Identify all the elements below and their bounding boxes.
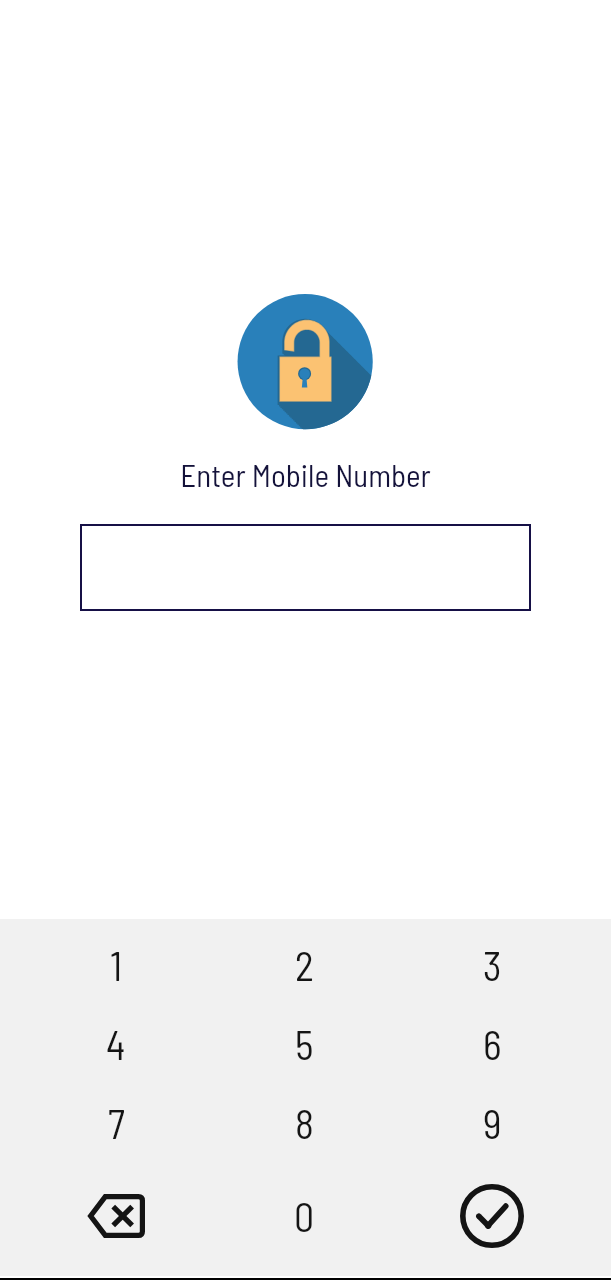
staticText: Enter Mobile Number (180, 456, 431, 493)
staticText: 5 (295, 1020, 314, 1068)
staticText: 2 (295, 941, 314, 989)
button[interactable]: Backspace (22, 1170, 210, 1262)
button[interactable]: 5 (210, 1004, 398, 1083)
button[interactable]: 1 (22, 925, 210, 1004)
staticText: 1 (110, 941, 123, 989)
staticText: 4 (106, 1020, 126, 1068)
staticText: 7 (108, 1099, 125, 1147)
button[interactable]: 8 (210, 1083, 398, 1162)
staticText: 9 (483, 1099, 502, 1147)
button[interactable]: 9 (398, 1083, 586, 1162)
button[interactable]: Confirm (398, 1170, 586, 1262)
button[interactable]: 3 (398, 925, 586, 1004)
button[interactable]: 7 (22, 1083, 210, 1162)
button[interactable]: 6 (398, 1004, 586, 1083)
staticText: 3 (483, 941, 502, 989)
button[interactable]: 0 (210, 1170, 398, 1262)
button[interactable]: 2 (210, 925, 398, 1004)
staticText: 6 (483, 1020, 502, 1068)
staticText: 0 (294, 1192, 315, 1240)
button[interactable] (80, 524, 531, 611)
button[interactable]: 4 (22, 1004, 210, 1083)
staticText: 8 (295, 1099, 314, 1147)
